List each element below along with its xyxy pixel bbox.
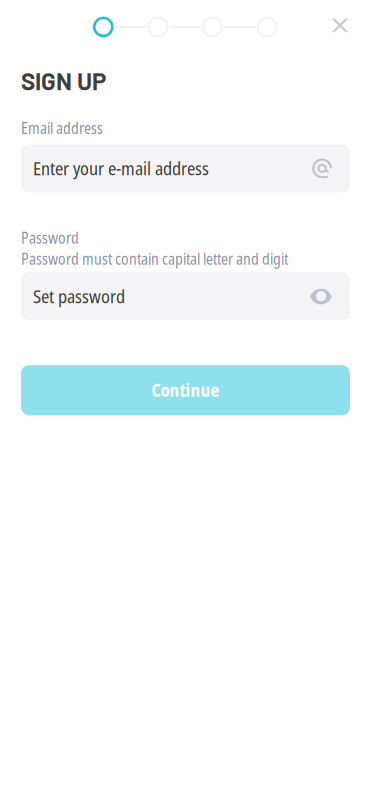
- staticText: Email address: [21, 117, 103, 138]
- button[interactable]: Continue: [21, 365, 350, 415]
- staticText: Continue: [151, 378, 219, 402]
- staticText: Set password: [33, 284, 125, 308]
- staticText: Password must contain capital letter and…: [21, 248, 288, 269]
- button[interactable]: Set password: [21, 272, 350, 320]
- button[interactable]: Enter your e-mail address: [21, 144, 350, 192]
- staticText: Password: [21, 227, 79, 248]
- staticText: SIGN UP: [21, 66, 106, 95]
- staticText: Enter your e-mail address: [33, 156, 209, 181]
- button[interactable]: Close: [318, 18, 362, 33]
